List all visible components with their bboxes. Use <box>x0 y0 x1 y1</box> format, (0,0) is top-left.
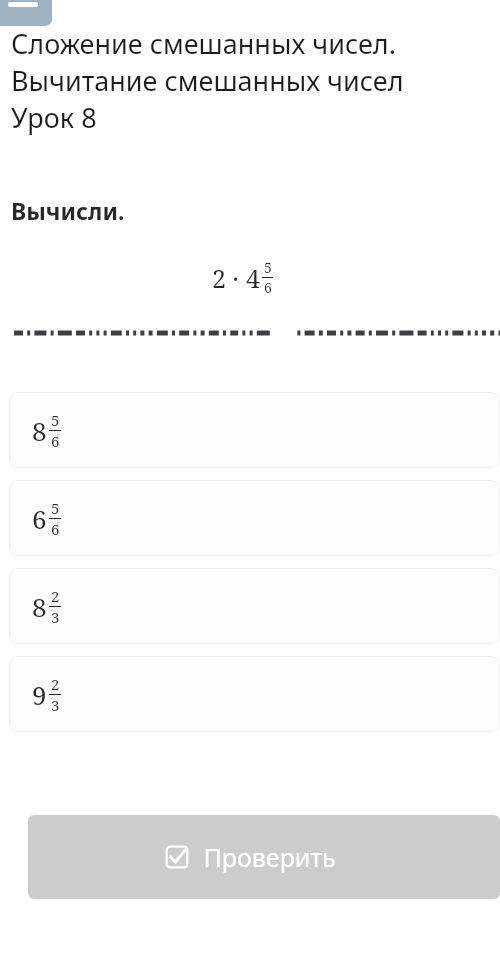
staticText: 5 <box>51 410 60 430</box>
staticText: 5 <box>264 258 272 277</box>
staticText: 6 <box>51 431 60 451</box>
staticText: Вычитание смешанных чисел <box>11 62 404 99</box>
button[interactable]: 8 <box>9 392 500 468</box>
button[interactable]: Label <box>0 0 52 26</box>
staticText: 6 <box>32 501 47 536</box>
staticText: Проверить <box>203 840 336 874</box>
button[interactable]: Проверить <box>28 815 500 899</box>
staticText: 6 <box>264 278 272 297</box>
staticText: 5 <box>51 498 60 518</box>
button[interactable]: 9 <box>9 656 500 732</box>
staticText: Сложение смешанных чисел. <box>11 25 396 62</box>
staticText: Вычисли. <box>11 195 125 226</box>
staticText: 9 <box>32 677 47 712</box>
button[interactable]: 6 <box>9 480 500 556</box>
staticText: 3 <box>51 607 60 627</box>
button[interactable]: 8 <box>9 568 500 644</box>
staticText: 2 <box>212 261 226 295</box>
staticText: · <box>226 261 246 295</box>
staticText: 8 <box>32 413 47 448</box>
staticText: 2 <box>51 586 60 606</box>
staticText: 4 <box>246 261 260 295</box>
staticText: 3 <box>51 695 60 715</box>
staticText: 6 <box>51 519 60 539</box>
staticText: 2 <box>51 674 60 694</box>
staticText: Урок 8 <box>11 99 97 136</box>
staticText: 8 <box>32 589 47 624</box>
